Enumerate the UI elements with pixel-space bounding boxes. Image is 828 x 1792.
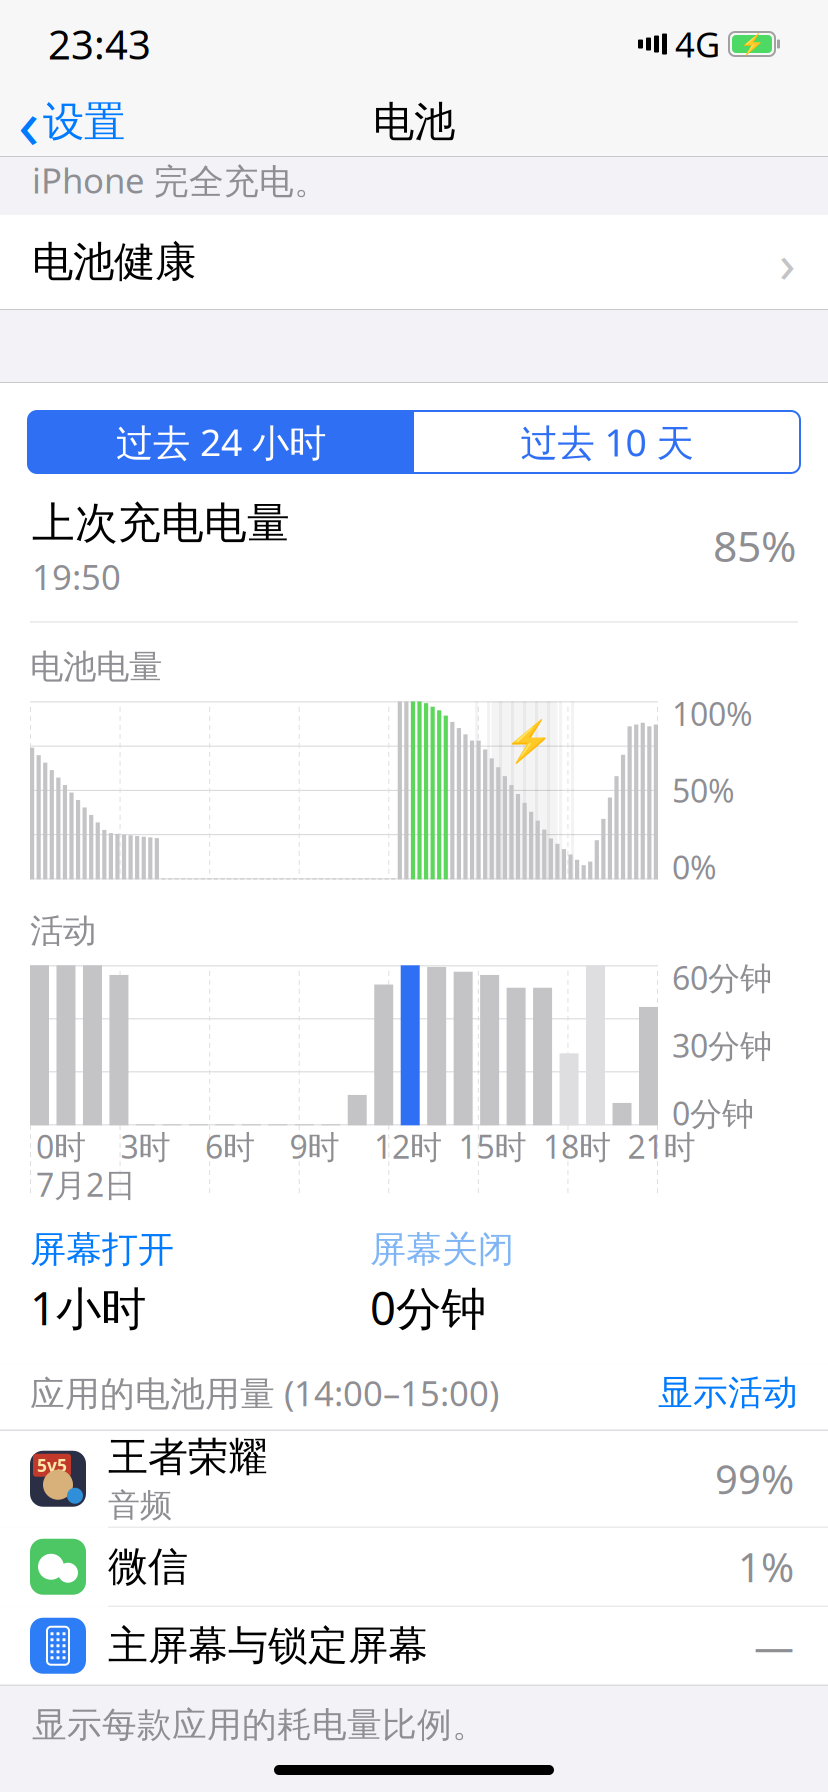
button[interactable]: 5v5 [0, 1431, 828, 1528]
staticText: 应用的电池用量 (14:00–15:00) [30, 1370, 499, 1416]
staticText: 0分钟 [672, 1092, 754, 1134]
staticText: 电池健康 [32, 237, 196, 287]
staticText: 18时 [543, 1125, 611, 1168]
staticText: 0% [672, 846, 717, 888]
staticText: › [779, 227, 796, 297]
staticText: 99% [715, 1452, 794, 1505]
staticText: 85% [713, 517, 796, 574]
staticText: 显示活动 [658, 1371, 798, 1414]
staticText: 5v5 [37, 1454, 67, 1477]
staticText: 21时 [627, 1125, 695, 1168]
button[interactable]: 过去 10 天 [414, 411, 800, 473]
staticText: 30分钟 [672, 1024, 772, 1067]
staticText: 音频 [108, 1486, 172, 1525]
staticText: 4G [675, 21, 720, 67]
staticText: 1% [738, 1540, 794, 1593]
staticText: ⚡ [739, 33, 764, 55]
staticText: 设置 [43, 97, 125, 147]
staticText: 12时 [374, 1125, 442, 1168]
staticText: 活动 [30, 910, 96, 951]
button[interactable]: 过去 24 小时 [28, 411, 414, 473]
staticText: iPhone 完全充电。 [32, 157, 329, 203]
staticText: 15时 [458, 1125, 526, 1168]
staticText: 3时 [120, 1125, 170, 1168]
button[interactable]: 电池健康 [0, 215, 828, 309]
button[interactable]: ‹ [0, 88, 143, 156]
staticText: ⚡ [504, 719, 554, 764]
staticText: — [754, 1619, 794, 1672]
staticText: 50% [672, 769, 735, 812]
staticText: 100% [672, 692, 753, 735]
staticText: 电池 [373, 97, 455, 147]
staticText: 电池电量 [30, 646, 162, 687]
staticText: 0分钟 [370, 1277, 486, 1338]
staticText: ‹ [18, 76, 39, 168]
staticText: 过去 10 天 [520, 417, 693, 467]
staticText: 过去 24 小时 [116, 417, 326, 467]
staticText: 王者荣耀 [108, 1432, 268, 1482]
staticText: 上次充电电量 [32, 497, 290, 549]
staticText: 19:50 [32, 553, 121, 599]
staticText: 0时 [36, 1125, 86, 1168]
staticText: 1小时 [30, 1277, 146, 1338]
staticText: 主屏幕与锁定屏幕 [108, 1621, 428, 1670]
button[interactable]: 微信 [0, 1528, 828, 1607]
staticText: 6时 [205, 1125, 255, 1168]
staticText: 60分钟 [672, 956, 772, 999]
staticText: 9时 [289, 1125, 339, 1168]
staticText: 屏幕打开 [30, 1227, 174, 1271]
staticText: 23:43 [48, 17, 151, 70]
staticText: 屏幕关闭 [370, 1227, 514, 1271]
button[interactable]: 显示活动 [658, 1371, 798, 1414]
staticText: 7月2日 [36, 1163, 136, 1206]
staticText: 微信 [108, 1542, 188, 1591]
button[interactable]: 主屏幕与锁定屏幕 [0, 1607, 828, 1685]
staticText: 显示每款应用的耗电量比例。 [32, 1704, 487, 1746]
